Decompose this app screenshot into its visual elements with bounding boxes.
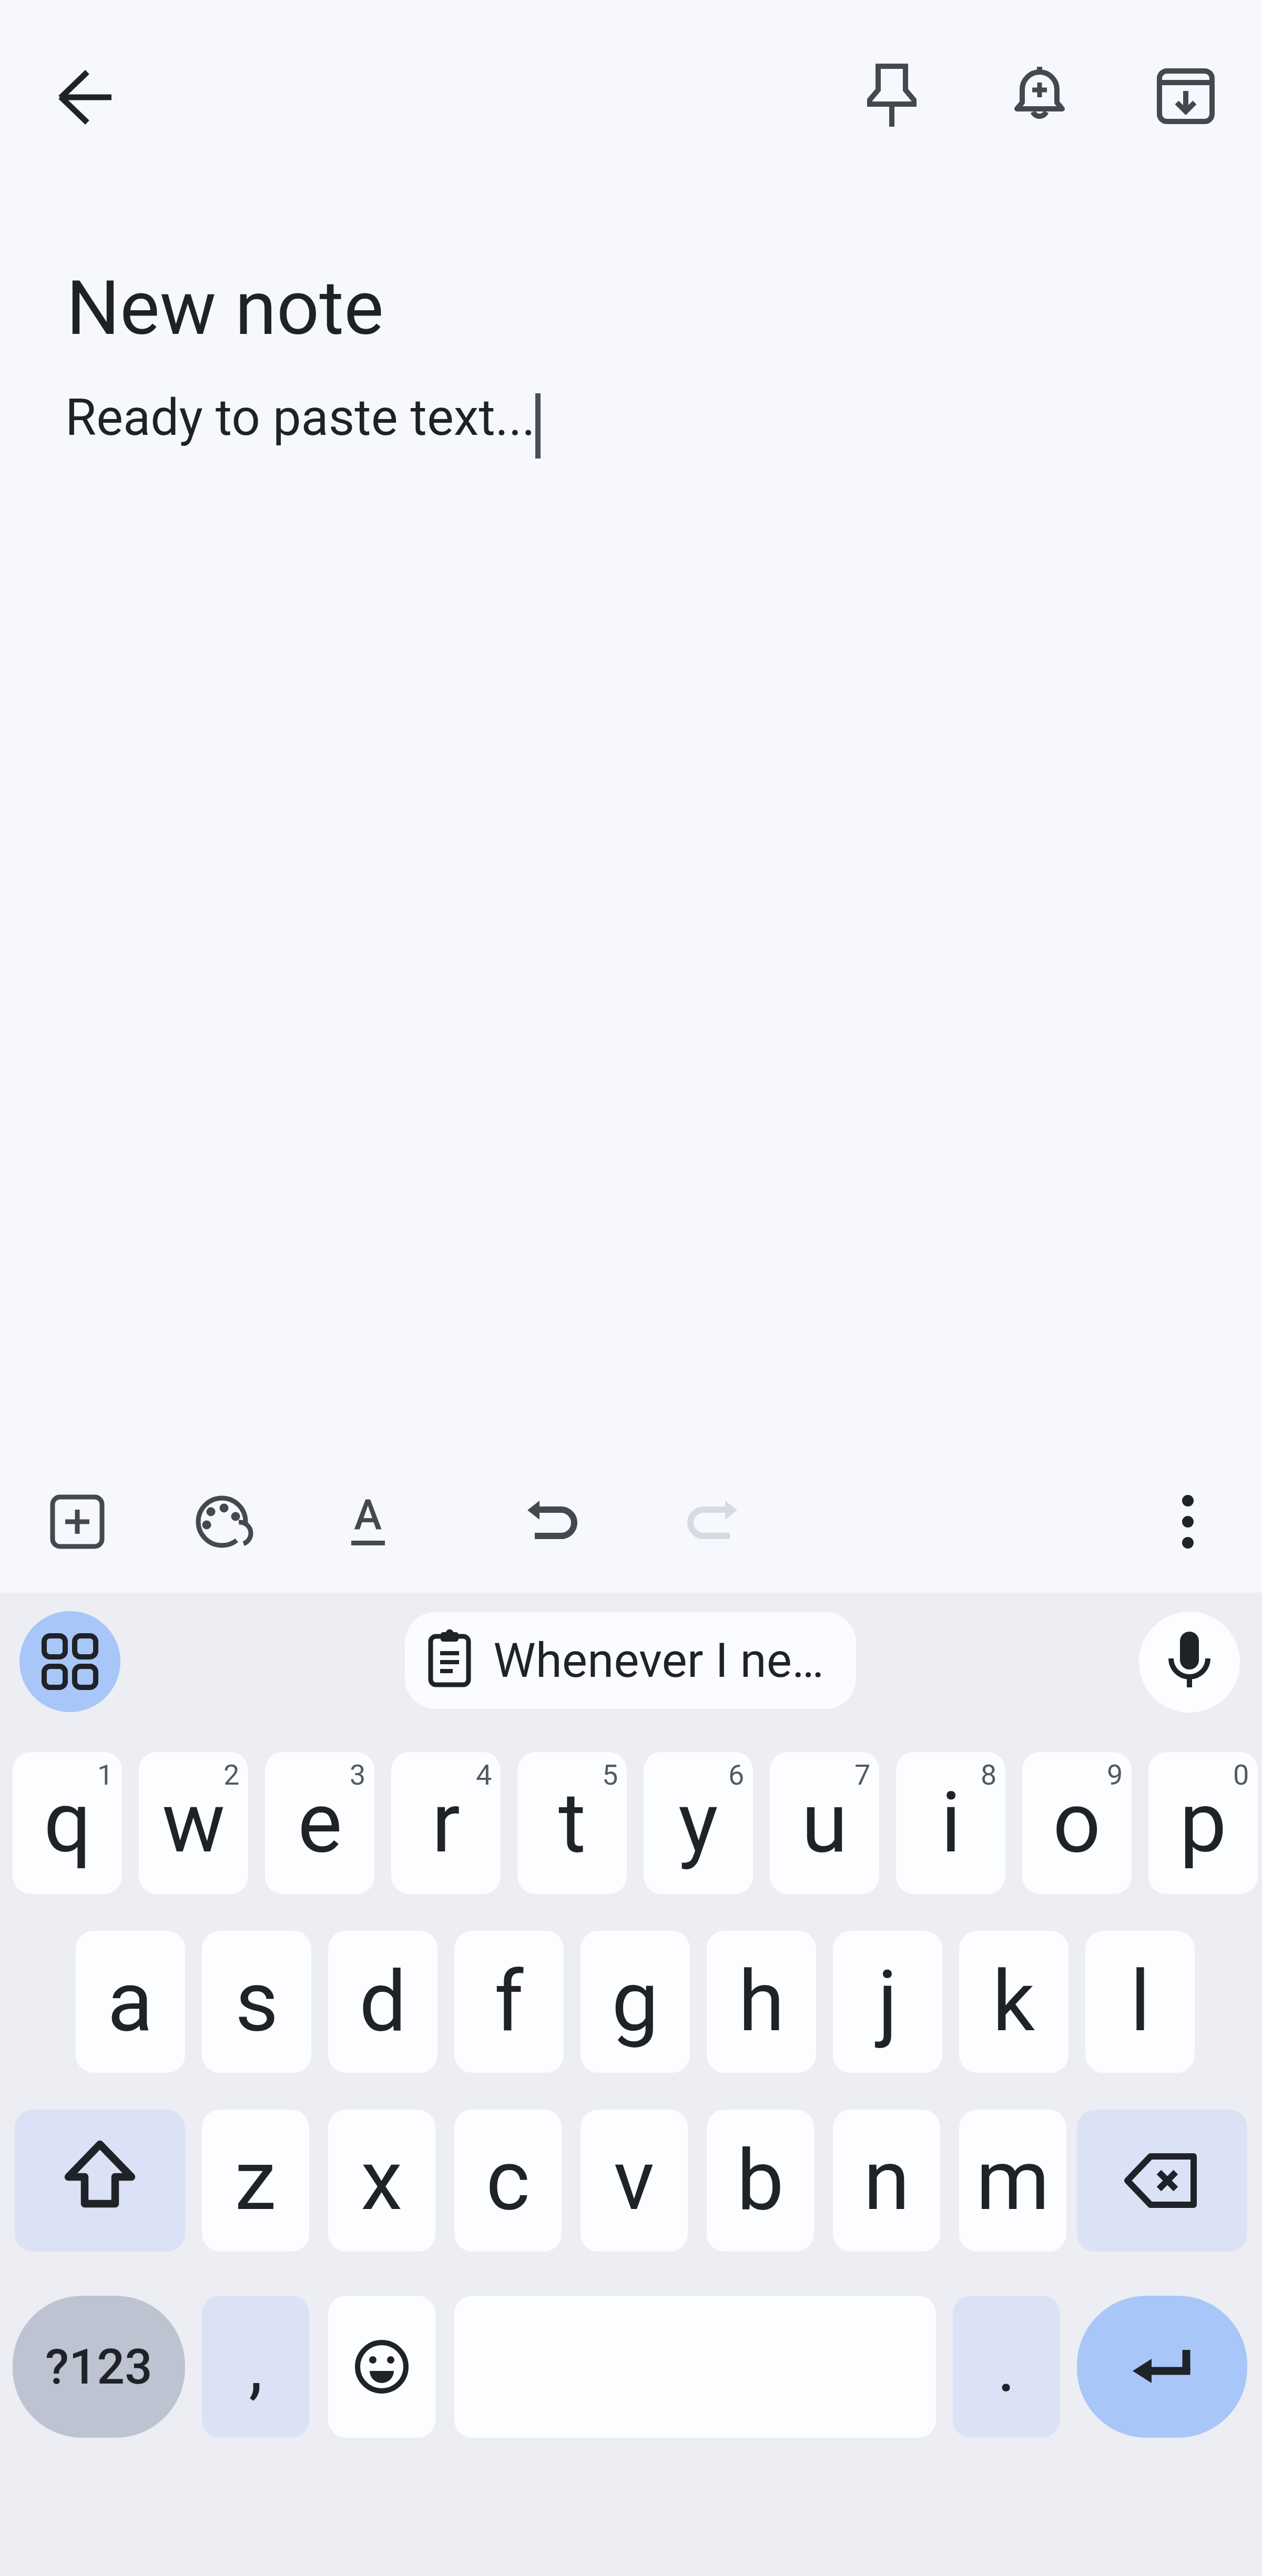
staticText: t	[558, 1774, 586, 1872]
staticText: 3	[350, 1758, 366, 1791]
button[interactable]: A	[339, 1493, 397, 1551]
button[interactable]	[1003, 59, 1076, 133]
staticText: 1	[97, 1758, 114, 1791]
staticText: x	[361, 2131, 403, 2230]
button[interactable]: m	[959, 2110, 1066, 2252]
staticText: 7	[854, 1758, 871, 1791]
staticText: y	[678, 1774, 718, 1872]
staticText: ,	[249, 2325, 263, 2408]
button[interactable]: c	[454, 2110, 562, 2252]
staticText: z	[235, 2131, 277, 2230]
staticText: 4	[476, 1758, 492, 1791]
button[interactable]: x	[328, 2110, 435, 2252]
button[interactable]: t	[517, 1752, 627, 1894]
button[interactable]: s	[202, 1931, 311, 2073]
button[interactable]: w	[139, 1752, 248, 1894]
staticText: l	[1130, 1952, 1151, 2051]
staticText: 9	[1107, 1758, 1123, 1791]
button[interactable]: a	[76, 1931, 185, 2073]
button[interactable]: ,	[202, 2296, 309, 2438]
button[interactable]	[19, 1611, 120, 1712]
button[interactable]: q	[13, 1752, 122, 1894]
staticText: Whenever I ne…	[493, 1633, 824, 1689]
staticText: g	[612, 1952, 659, 2051]
staticText: p	[1179, 1774, 1227, 1872]
staticText: 6	[728, 1758, 745, 1791]
button[interactable]: v	[581, 2110, 688, 2252]
staticText: 5	[602, 1758, 618, 1791]
staticText: k	[992, 1952, 1035, 2051]
button[interactable]	[50, 60, 124, 134]
staticText: n	[863, 2131, 910, 2230]
button[interactable]	[855, 59, 929, 133]
staticText: a	[107, 1952, 154, 2051]
staticText: q	[44, 1774, 91, 1872]
button[interactable]	[526, 1493, 584, 1551]
staticText: r	[432, 1774, 461, 1872]
button[interactable]: f	[454, 1931, 564, 2073]
staticText: w	[162, 1774, 226, 1872]
staticText: 0	[1233, 1758, 1249, 1791]
staticText: A	[354, 1490, 382, 1540]
button[interactable]: l	[1085, 1931, 1195, 2073]
staticText: 2	[223, 1758, 240, 1791]
staticText: h	[738, 1952, 785, 2051]
button[interactable]	[193, 1493, 251, 1551]
button[interactable]: z	[202, 2110, 309, 2252]
button[interactable]: Whenever I ne…	[405, 1612, 856, 1709]
button[interactable]: i	[896, 1752, 1005, 1894]
staticText: s	[235, 1952, 279, 2051]
button[interactable]	[1159, 1493, 1217, 1551]
button[interactable]	[1139, 1612, 1240, 1713]
button[interactable]: g	[581, 1931, 690, 2073]
staticText: b	[737, 2131, 784, 2230]
button[interactable]: e	[265, 1752, 374, 1894]
button[interactable]: b	[707, 2110, 814, 2252]
staticText: 8	[981, 1758, 997, 1791]
button[interactable]	[1149, 59, 1223, 133]
staticText: m	[976, 2131, 1050, 2230]
staticText: o	[1053, 1774, 1101, 1872]
button[interactable]: o	[1022, 1752, 1132, 1894]
staticText: e	[298, 1774, 342, 1872]
button[interactable]	[328, 2296, 435, 2438]
staticText: j	[878, 1952, 898, 2051]
staticText: u	[801, 1774, 848, 1872]
staticText: d	[359, 1952, 407, 2051]
staticText: New note	[66, 264, 384, 352]
button[interactable]: k	[959, 1931, 1068, 2073]
staticText: Ready to paste text...	[65, 388, 535, 447]
button[interactable]: d	[328, 1931, 437, 2073]
staticText: c	[486, 2131, 530, 2230]
button[interactable]	[1077, 2110, 1247, 2252]
button[interactable]: .	[953, 2296, 1060, 2438]
button[interactable]: h	[707, 1931, 816, 2073]
button[interactable]: n	[833, 2110, 940, 2252]
button[interactable]: ?123	[13, 2296, 185, 2438]
button[interactable]: u	[770, 1752, 879, 1894]
button[interactable]: j	[833, 1931, 942, 2073]
staticText: f	[494, 1952, 524, 2051]
button[interactable]	[48, 1493, 106, 1551]
button[interactable]: r	[391, 1752, 501, 1894]
button[interactable]	[1077, 2296, 1247, 2438]
button[interactable]	[681, 1493, 739, 1551]
staticText: v	[614, 2131, 655, 2230]
button[interactable]: p	[1148, 1752, 1258, 1894]
staticText: ?123	[45, 2338, 152, 2396]
staticText: i	[941, 1774, 961, 1872]
button[interactable]	[15, 2110, 185, 2252]
staticText: .	[997, 2325, 1016, 2408]
button[interactable]: y	[644, 1752, 753, 1894]
